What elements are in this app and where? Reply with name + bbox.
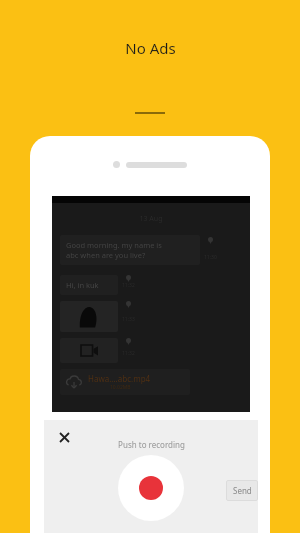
button[interactable]: Video message — [60, 338, 118, 363]
staticText: 10.02MB — [110, 384, 131, 391]
staticText: Send — [233, 485, 252, 496]
staticText: Hawa....abc.mp4 — [88, 373, 151, 384]
button[interactable]: Good morning. my name is abc when are yo… — [66, 240, 194, 260]
staticText: No Ads — [125, 38, 176, 58]
staticText: Good morning. my name is abc when are yo… — [66, 240, 162, 260]
button[interactable]: Hawa....abc.mp4 — [60, 369, 190, 395]
staticText: Hi, in kuk — [66, 280, 99, 290]
button[interactable]: Hi, in kuk — [66, 280, 112, 290]
button[interactable]: Send — [226, 480, 258, 501]
staticText: Push to recording — [118, 439, 185, 450]
button[interactable]: Record — [118, 455, 184, 521]
button[interactable]: Close — [53, 426, 75, 448]
button[interactable] — [60, 301, 118, 332]
staticText: 11:30 — [204, 254, 217, 261]
